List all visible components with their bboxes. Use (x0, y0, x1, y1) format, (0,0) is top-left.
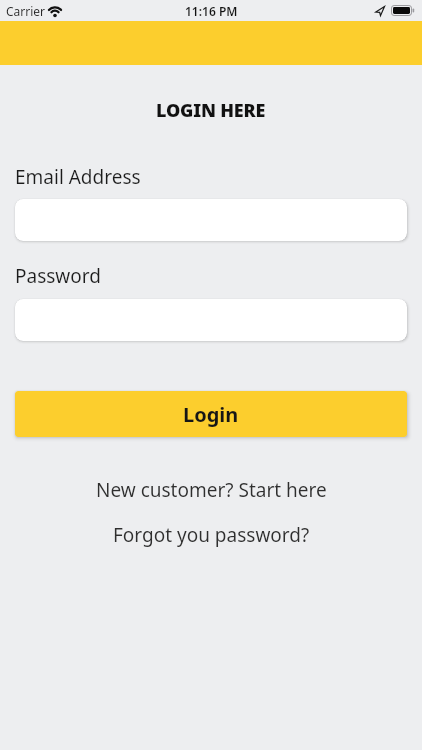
staticText: Password (15, 263, 101, 289)
staticText: Forgot you password? (113, 522, 310, 548)
staticText: LOGIN HERE (156, 98, 266, 123)
staticText: Email Address (15, 164, 141, 190)
staticText: Login (183, 401, 239, 428)
button[interactable]: Login (15, 391, 407, 437)
staticText: New customer? Start here (96, 477, 327, 503)
button[interactable]: New customer? Start here (0, 470, 422, 510)
staticText: Carrier (6, 3, 46, 19)
button[interactable]: Forgot you password? (0, 515, 422, 555)
staticText: 11:16 PM (185, 3, 238, 19)
